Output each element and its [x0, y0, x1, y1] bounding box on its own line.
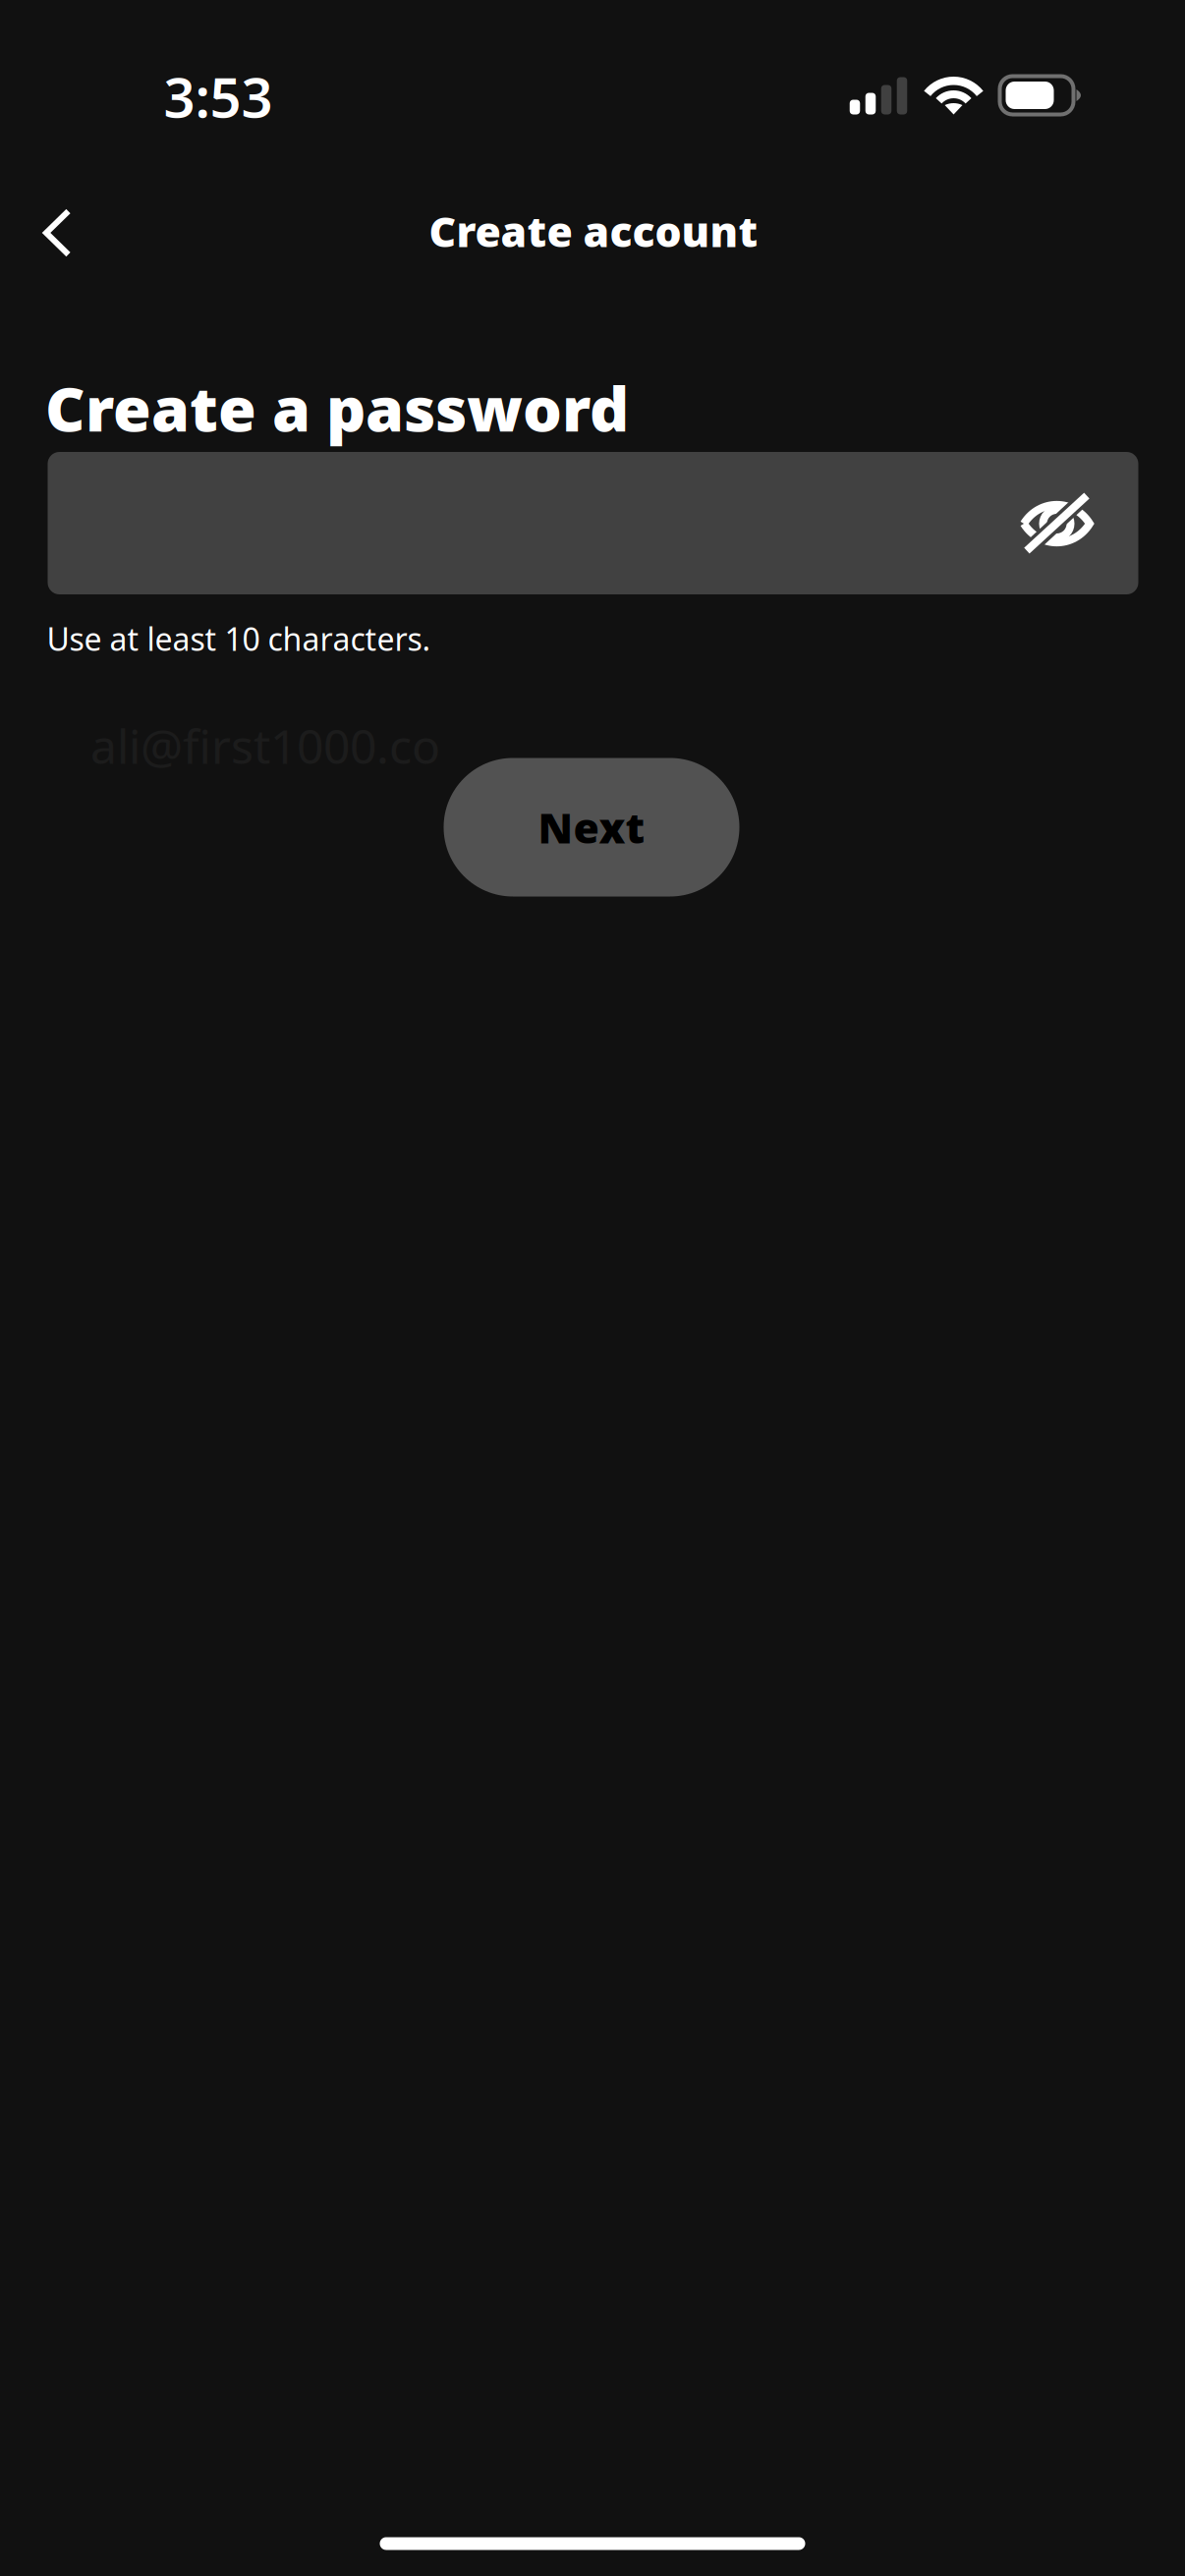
staticText: ali@first1000.co: [90, 714, 440, 777]
staticText: Use at least 10 characters.: [47, 618, 431, 660]
staticText: Create account: [429, 203, 758, 259]
staticText: 3:53: [164, 60, 273, 133]
staticText: Create a password: [45, 367, 629, 449]
button[interactable]: Show password: [1003, 469, 1111, 577]
button[interactable]: Password: [48, 452, 1138, 594]
button[interactable]: Back: [3, 179, 111, 287]
button[interactable]: Next: [444, 758, 739, 896]
staticText: Next: [538, 799, 645, 855]
